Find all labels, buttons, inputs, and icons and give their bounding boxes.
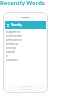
button[interactable]: Home (19, 86, 32, 90)
staticText: mutual (6, 50, 15, 54)
staticText: assignment (6, 30, 21, 34)
staticText: Recently (11, 23, 22, 27)
button[interactable]: concept (5, 46, 46, 50)
staticText: it (6, 54, 8, 58)
staticText: achievement (6, 38, 22, 42)
button[interactable]: Menu (5, 21, 46, 29)
staticText: behaviour (6, 42, 19, 46)
button[interactable]: computer (5, 58, 46, 62)
button[interactable]: achievement (5, 38, 46, 42)
button[interactable]: assignment (5, 30, 46, 34)
staticText: concept (6, 46, 16, 50)
button[interactable]: behaviour (5, 42, 46, 46)
staticText: Recently Words (0, 0, 45, 7)
staticText: environment (6, 34, 22, 38)
button[interactable]: environment (5, 34, 46, 38)
button[interactable]: Menu (6, 24, 9, 27)
staticText: computer (6, 58, 18, 62)
button[interactable]: it (5, 54, 46, 58)
button[interactable]: mutual (5, 50, 46, 54)
